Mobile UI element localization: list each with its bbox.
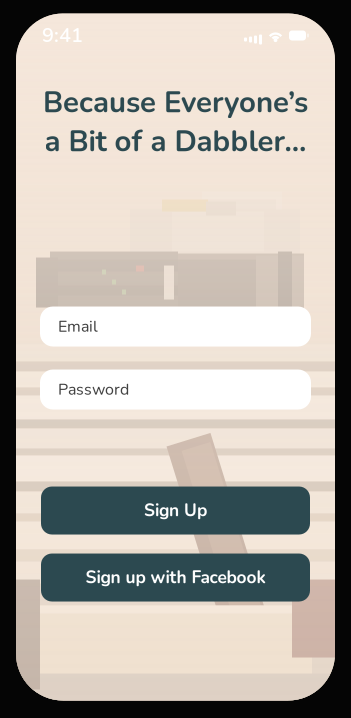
staticText: a Bit of a Dabbler…	[44, 121, 306, 161]
button[interactable]: Sign Up	[41, 486, 310, 534]
staticText: Because Everyone’s	[43, 82, 308, 122]
button[interactable]: Email	[40, 306, 311, 346]
staticText: Email	[58, 316, 98, 337]
staticText: Sign Up	[144, 499, 207, 522]
staticText: Password	[58, 379, 129, 400]
staticText: Sign up with Facebook	[85, 566, 265, 589]
staticText: 9:41	[42, 22, 83, 49]
button[interactable]: Password	[40, 369, 311, 409]
button[interactable]: Sign up with Facebook	[41, 553, 310, 601]
